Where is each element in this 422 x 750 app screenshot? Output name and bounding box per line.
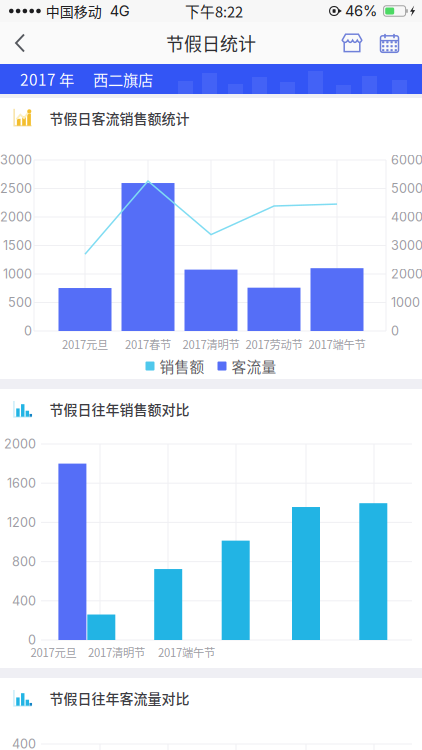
staticText: 西二旗店 bbox=[93, 68, 153, 90]
staticText: 2017清明节 bbox=[88, 644, 145, 660]
staticText: 2017劳动节 bbox=[245, 336, 302, 352]
button[interactable]: 西二旗店 bbox=[89, 64, 157, 94]
staticText: 1200 bbox=[7, 515, 36, 530]
staticText: 4000 bbox=[391, 209, 422, 225]
staticText: 节假日客流销售额统计 bbox=[49, 108, 189, 128]
button[interactable]: 2017 年 bbox=[16, 64, 78, 94]
staticText: 2017端午节 bbox=[308, 336, 365, 352]
staticText: 1500 bbox=[3, 238, 32, 253]
staticText: 6000 bbox=[391, 152, 422, 168]
staticText: 5000 bbox=[391, 181, 422, 196]
staticText: 400 bbox=[12, 593, 36, 608]
staticText: 客流量 bbox=[231, 355, 276, 377]
staticText: 2000 bbox=[0, 209, 32, 225]
staticText: 节假日往年客流量对比 bbox=[49, 688, 189, 708]
staticText: 800 bbox=[12, 554, 36, 569]
staticText: 2000 bbox=[4, 436, 36, 452]
staticText: 3000 bbox=[0, 152, 32, 168]
staticText: 1000 bbox=[3, 266, 32, 282]
staticText: 节假日往年销售额对比 bbox=[49, 399, 189, 419]
staticText: 1000 bbox=[391, 295, 420, 310]
staticText: 中国移动 bbox=[46, 1, 102, 21]
staticText: 1600 bbox=[7, 475, 36, 491]
staticText: 4G bbox=[110, 2, 130, 20]
staticText: 500 bbox=[8, 295, 32, 310]
staticText: 2017清明节 bbox=[182, 336, 239, 352]
button[interactable]: Back bbox=[1, 22, 39, 64]
staticText: 46% bbox=[345, 2, 377, 20]
staticText: 2500 bbox=[0, 181, 32, 196]
staticText: 节假日统计 bbox=[166, 30, 256, 56]
staticText: 2000 bbox=[391, 266, 422, 282]
staticText: 下午8:22 bbox=[185, 0, 243, 22]
staticText: 销售额 bbox=[159, 355, 204, 377]
staticText: 3000 bbox=[391, 238, 422, 253]
staticText: 2017元旦 bbox=[62, 336, 108, 352]
button[interactable]: Store bbox=[333, 22, 371, 64]
staticText: 0 bbox=[24, 323, 32, 339]
staticText: 0 bbox=[28, 632, 36, 648]
staticText: 2017 年 bbox=[20, 68, 74, 90]
staticText: 2017元旦 bbox=[30, 644, 76, 660]
staticText: 400 bbox=[12, 736, 36, 750]
staticText: 0 bbox=[391, 323, 399, 339]
button[interactable]: Calendar bbox=[371, 22, 408, 64]
staticText: 2017春节 bbox=[125, 336, 171, 352]
staticText: 2017端午节 bbox=[158, 644, 215, 660]
